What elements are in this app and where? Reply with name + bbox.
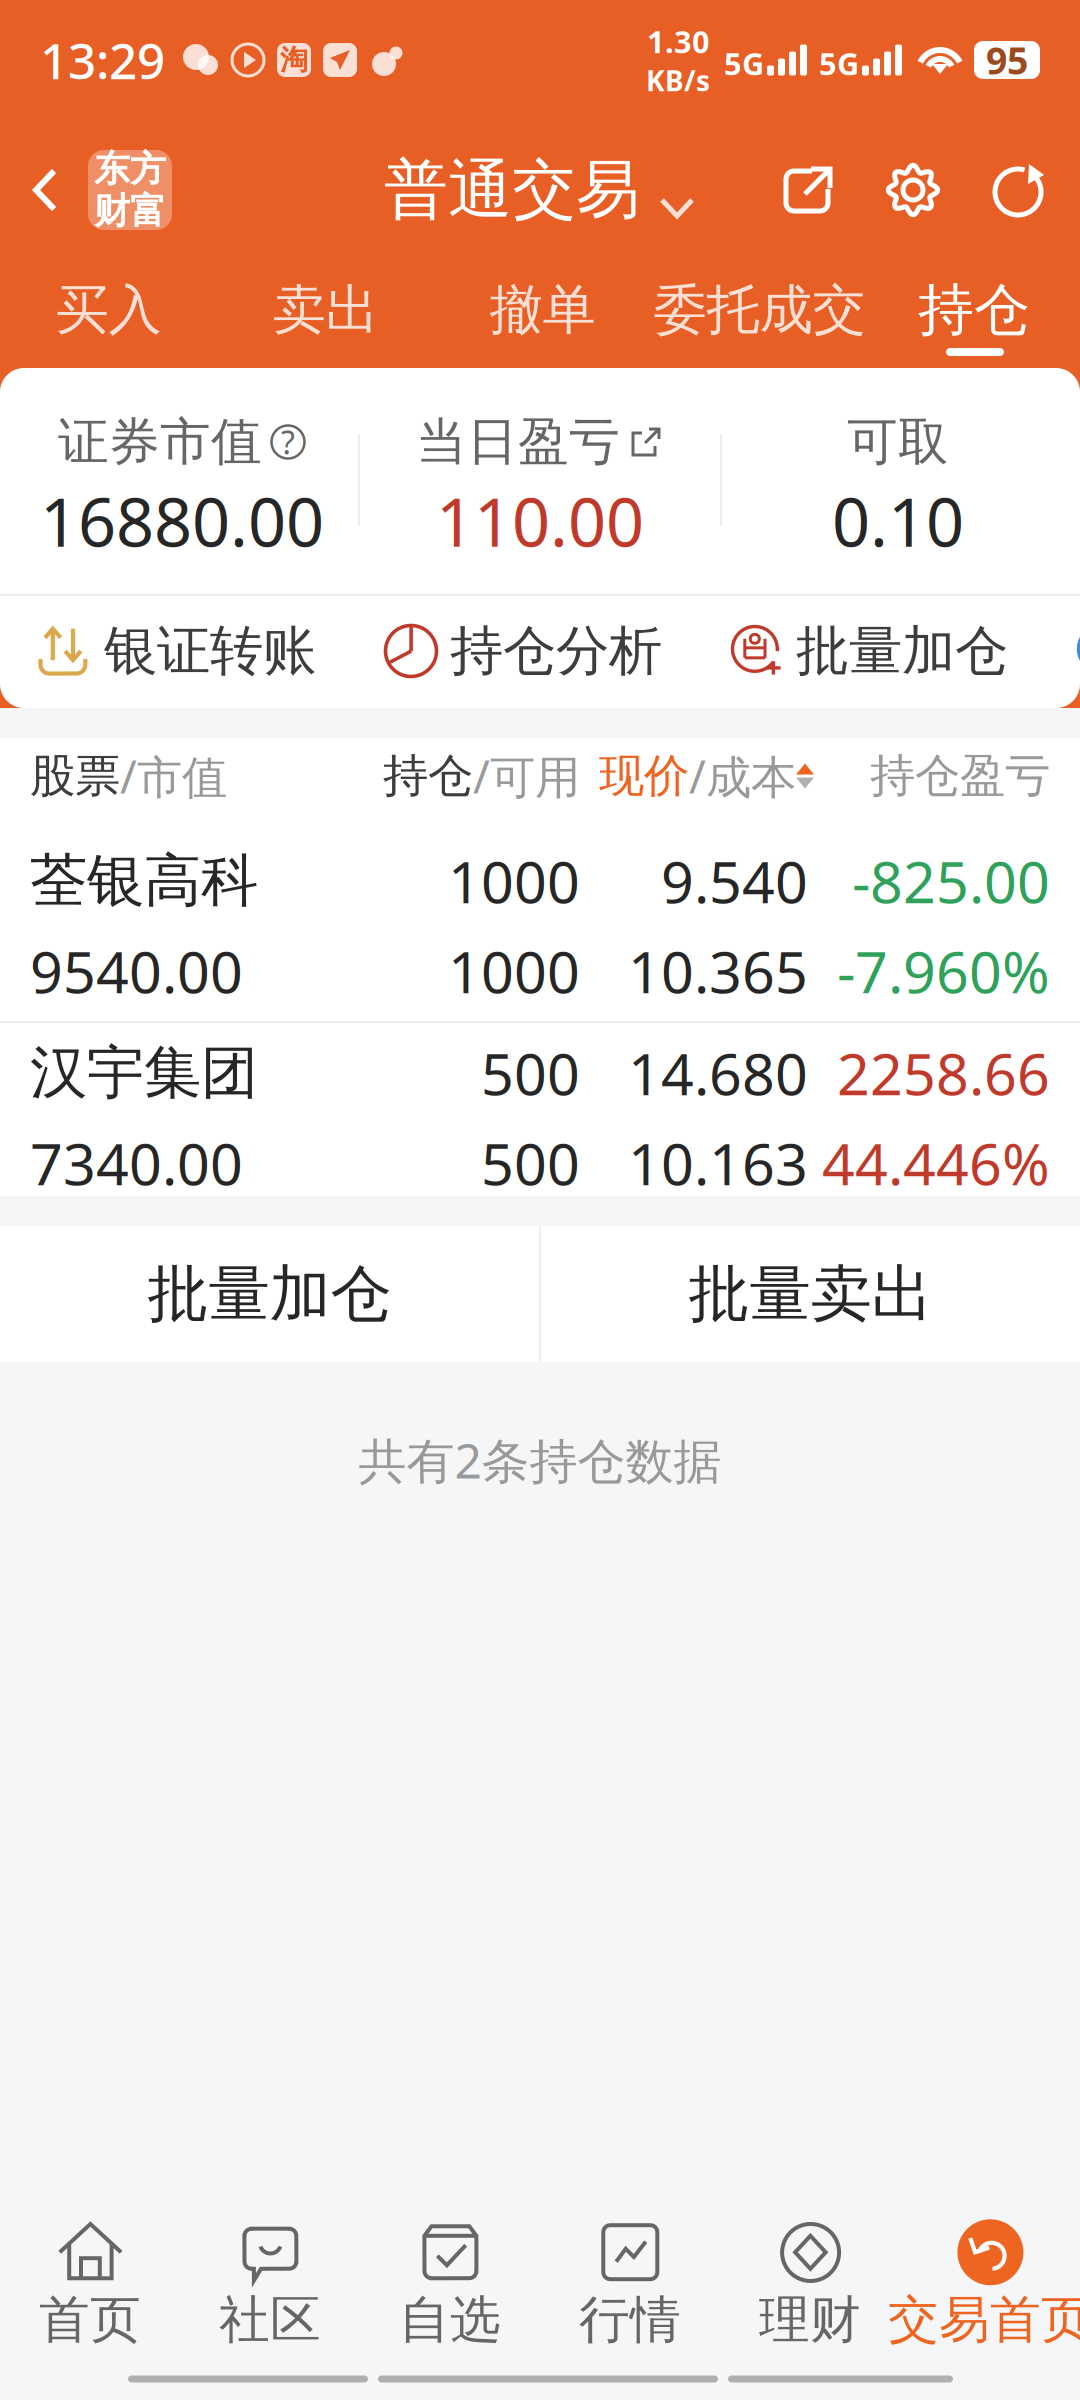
button[interactable]: 荃银高科 (0, 831, 1080, 1021)
button[interactable]: Settings (882, 159, 944, 221)
button[interactable]: 东方财富 (88, 150, 172, 230)
button[interactable]: 买入 (0, 272, 217, 348)
staticText: 东方 (94, 147, 166, 191)
staticText: 撤单 (489, 277, 595, 343)
button[interactable]: Back (4, 144, 88, 236)
staticText: 理财 (759, 2289, 861, 2351)
staticText: 9540.00 (30, 933, 243, 1009)
button[interactable]: 持仓分析 (382, 596, 662, 706)
button[interactable]: 理财 (720, 2212, 900, 2358)
staticText: 行情 (579, 2289, 681, 2351)
staticText: 500 (481, 1125, 580, 1201)
staticText: 500 (481, 1035, 580, 1111)
staticText: 持仓盈亏 (870, 748, 1050, 804)
staticText: 持仓分析 (450, 618, 662, 684)
staticText: 银证转账 (104, 618, 316, 684)
staticText: 汉宇集团 (30, 1038, 258, 1108)
button[interactable]: 证券市值 (3, 412, 361, 552)
button[interactable]: 卖出 (217, 272, 434, 348)
staticText: 共有2条持仓数据 (358, 1428, 721, 1492)
staticText: 委托成交 (653, 277, 865, 343)
button[interactable]: 银证转账 (36, 596, 316, 706)
button[interactable]: 委托成交 (651, 272, 868, 348)
staticText: 首页 (39, 2289, 141, 2351)
staticText: 卖出 (272, 277, 378, 343)
staticText: 9.540 (661, 843, 808, 919)
staticText: 1.30 (647, 21, 710, 62)
staticText: 16880.00 (40, 477, 324, 565)
staticText: 110.00 (436, 477, 644, 565)
button[interactable]: 交易首页 (900, 2212, 1080, 2358)
staticText: /市值 (120, 746, 227, 806)
staticText: 证券市值 (58, 411, 262, 473)
staticText: 当日盈亏 (416, 411, 620, 473)
button[interactable]: 批量减仓 (1074, 596, 1080, 706)
button[interactable]: 撤单 (434, 272, 651, 348)
staticText: 1000 (448, 933, 580, 1009)
staticText: 10.163 (628, 1125, 808, 1201)
staticText: KB/s (646, 62, 710, 99)
staticText: 批量加仓 (796, 618, 1008, 684)
staticText: 可取 (847, 411, 949, 473)
staticText: 普通交易 (384, 151, 640, 229)
staticText: 财富 (94, 189, 166, 233)
staticText: -825.00 (852, 843, 1050, 919)
staticText: 10.365 (628, 933, 808, 1009)
staticText: 淘 (280, 43, 308, 77)
staticText: 批量加仓 (147, 1256, 391, 1332)
button[interactable]: 批量加仓 (728, 596, 1008, 706)
button[interactable]: 可取 (719, 412, 1077, 552)
button[interactable]: 持仓 (868, 272, 1080, 348)
staticText: 持仓 (918, 276, 1030, 344)
staticText: 95 (986, 35, 1028, 85)
staticText: 2258.66 (837, 1035, 1050, 1111)
button[interactable]: 当日盈亏 (361, 412, 719, 552)
staticText: 批量卖出 (688, 1256, 932, 1332)
staticText: 5G (819, 43, 859, 84)
staticText: /成本 (689, 746, 796, 806)
staticText: 买入 (55, 277, 161, 343)
staticText: 社区 (219, 2289, 321, 2351)
button[interactable]: 行情 (540, 2212, 720, 2358)
staticText: 13:29 (40, 27, 165, 93)
button[interactable]: 汉宇集团 (0, 1023, 1080, 1213)
staticText: ? (281, 421, 295, 463)
button[interactable]: Share (776, 159, 838, 221)
staticText: 现价 (599, 748, 689, 804)
staticText: 自选 (399, 2289, 501, 2351)
staticText: 14.680 (628, 1035, 808, 1111)
staticText: /可用 (473, 746, 580, 806)
button[interactable]: 批量加仓 (0, 1226, 539, 1362)
button[interactable]: 自选 (360, 2212, 540, 2358)
staticText: 交易首页 (888, 2289, 1080, 2351)
staticText: 0.10 (832, 477, 964, 565)
staticText: 7340.00 (30, 1125, 243, 1201)
staticText: 荃银高科 (30, 846, 258, 916)
button[interactable]: 批量卖出 (541, 1226, 1080, 1362)
staticText: 44.446% (822, 1125, 1050, 1201)
button[interactable]: 社区 (180, 2212, 360, 2358)
staticText: 5G (724, 43, 764, 84)
staticText: -7.960% (837, 933, 1050, 1009)
staticText: 股票 (30, 748, 120, 804)
button[interactable]: 首页 (0, 2212, 180, 2358)
staticText: 1000 (448, 843, 580, 919)
staticText: 持仓 (383, 748, 473, 804)
button[interactable]: Refresh (988, 159, 1050, 221)
